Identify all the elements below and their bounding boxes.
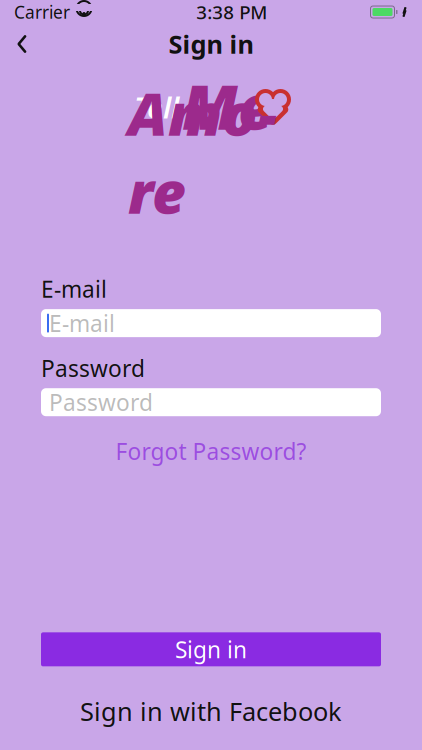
staticText: Password bbox=[41, 353, 145, 383]
button[interactable]: Sign in bbox=[41, 632, 381, 666]
staticText: Amore bbox=[128, 74, 277, 230]
button[interactable]: E-mail bbox=[41, 309, 381, 337]
staticText: Password bbox=[49, 387, 153, 417]
staticText: Forgot Password? bbox=[115, 436, 306, 466]
staticText: Tell bbox=[134, 87, 179, 126]
staticText: E-mail bbox=[41, 274, 107, 304]
button[interactable]: Forgot Password? bbox=[41, 430, 381, 472]
button[interactable]: Back bbox=[0, 24, 44, 64]
button[interactable]: Sign in with Facebook bbox=[0, 686, 422, 736]
staticText: 3:38 PM bbox=[196, 0, 267, 24]
staticText: Me bbox=[182, 65, 274, 147]
staticText: Sign in bbox=[175, 634, 247, 664]
staticText: E-mail bbox=[49, 308, 115, 338]
staticText: Sign in bbox=[168, 27, 253, 61]
staticText: Sign in with Facebook bbox=[80, 694, 342, 728]
button[interactable]: Password bbox=[41, 388, 381, 416]
staticText: Carrier bbox=[14, 0, 70, 23]
